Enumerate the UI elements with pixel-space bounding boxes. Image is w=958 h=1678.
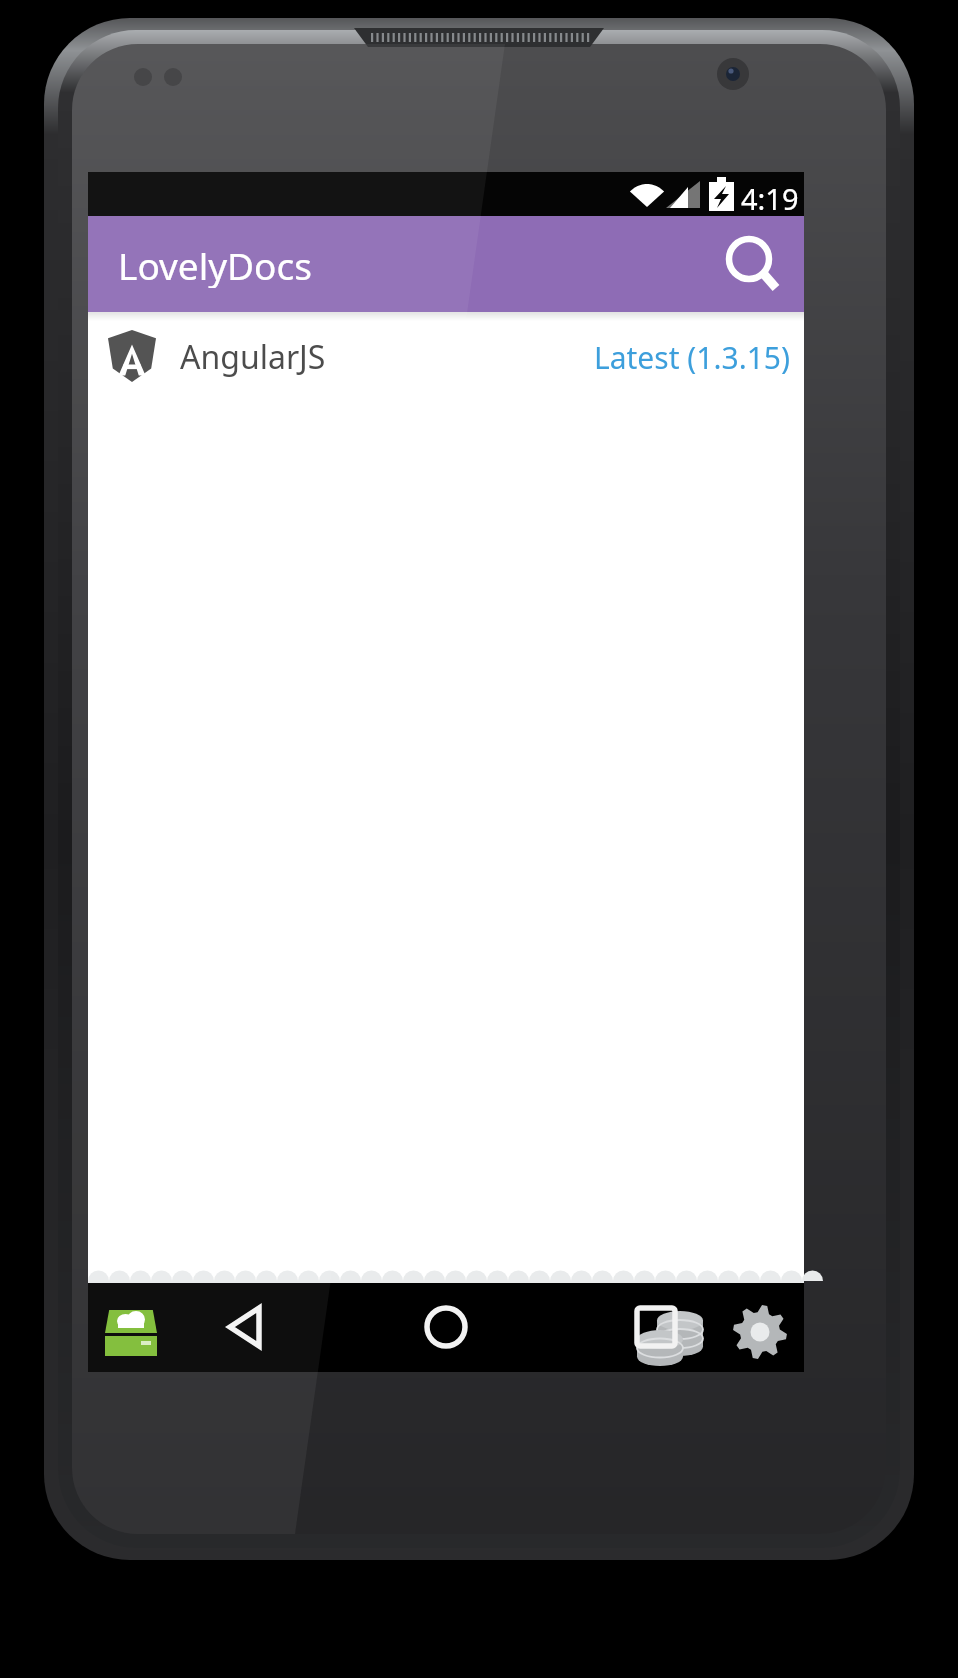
button[interactable]: Recent apps bbox=[606, 1285, 706, 1371]
button[interactable]: Home bbox=[396, 1285, 496, 1371]
staticText: 4:19 bbox=[741, 179, 799, 215]
staticText: LovelyDocs bbox=[118, 240, 312, 288]
button[interactable]: Back bbox=[195, 1285, 295, 1371]
staticText: AngularJS bbox=[180, 335, 326, 379]
button[interactable]: Downloads bbox=[92, 1292, 176, 1376]
button[interactable]: Donate bbox=[628, 1292, 714, 1376]
button[interactable]: Search bbox=[705, 217, 799, 311]
button[interactable]: Settings bbox=[718, 1292, 802, 1376]
button[interactable]: AngularJS bbox=[88, 314, 804, 400]
staticText: Latest (1.3.15) bbox=[593, 337, 790, 378]
